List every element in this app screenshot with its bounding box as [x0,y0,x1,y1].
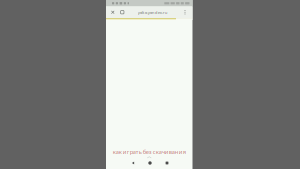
button[interactable]: Back [124,159,142,166]
staticText: как играть без скачивания [113,148,186,156]
button[interactable]: More options [178,6,192,18]
staticText: yalta.yandex.ru [138,9,168,15]
button[interactable]: Tabs [117,6,127,18]
button[interactable]: Close [108,6,117,18]
button[interactable]: Home [142,159,158,166]
button[interactable]: Recent apps [158,159,176,166]
button[interactable]: как играть без скачивания [106,148,192,155]
